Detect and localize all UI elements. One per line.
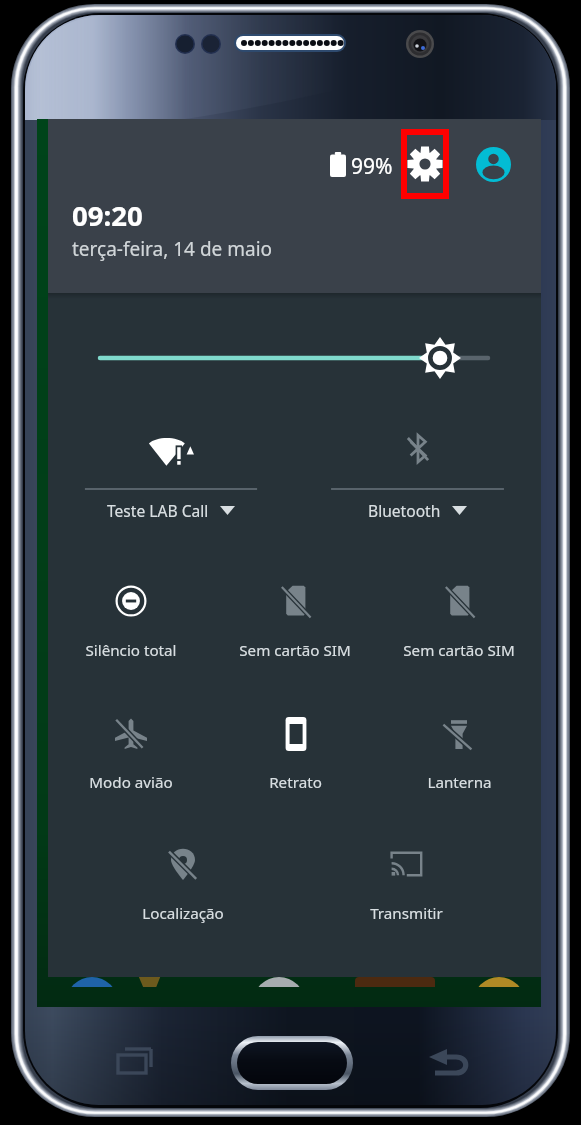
- staticText: Retrato: [269, 772, 322, 793]
- button[interactable]: Teste LAB Call: [48, 422, 294, 521]
- staticText: Teste LAB Call: [107, 500, 209, 521]
- staticText: Sem cartão SIM: [403, 640, 515, 661]
- staticText: Bluetooth: [368, 500, 441, 521]
- button[interactable]: Sem cartão SIM: [377, 581, 541, 661]
- button[interactable]: Localização: [71, 844, 294, 924]
- button[interactable]: Lanterna: [377, 713, 541, 793]
- staticText: Modo avião: [89, 772, 173, 793]
- button[interactable]: Modo avião: [48, 713, 213, 793]
- button[interactable]: Transmitir: [294, 844, 518, 924]
- staticText: terça-feira, 14 de maio: [72, 236, 273, 262]
- button[interactable]: Retrato: [213, 713, 377, 793]
- staticText: Sem cartão SIM: [239, 640, 351, 661]
- button[interactable]: Brightness: [48, 337, 541, 379]
- button[interactable]: User account: [476, 147, 511, 182]
- staticText: Silêncio total: [85, 640, 177, 661]
- staticText: 09:20: [72, 197, 143, 234]
- button[interactable]: Recents: [106, 1040, 164, 1084]
- button[interactable]: Silêncio total: [48, 581, 213, 661]
- staticText: Localização: [142, 903, 224, 924]
- button[interactable]: Home: [231, 1036, 353, 1090]
- staticText: 99%: [351, 152, 393, 181]
- staticText: Transmitir: [370, 903, 443, 924]
- button[interactable]: Bluetooth: [294, 422, 541, 521]
- button[interactable]: Back: [421, 1042, 479, 1086]
- staticText: Lanterna: [427, 772, 492, 793]
- button[interactable]: Settings: [407, 135, 443, 193]
- button[interactable]: Sem cartão SIM: [213, 581, 377, 661]
